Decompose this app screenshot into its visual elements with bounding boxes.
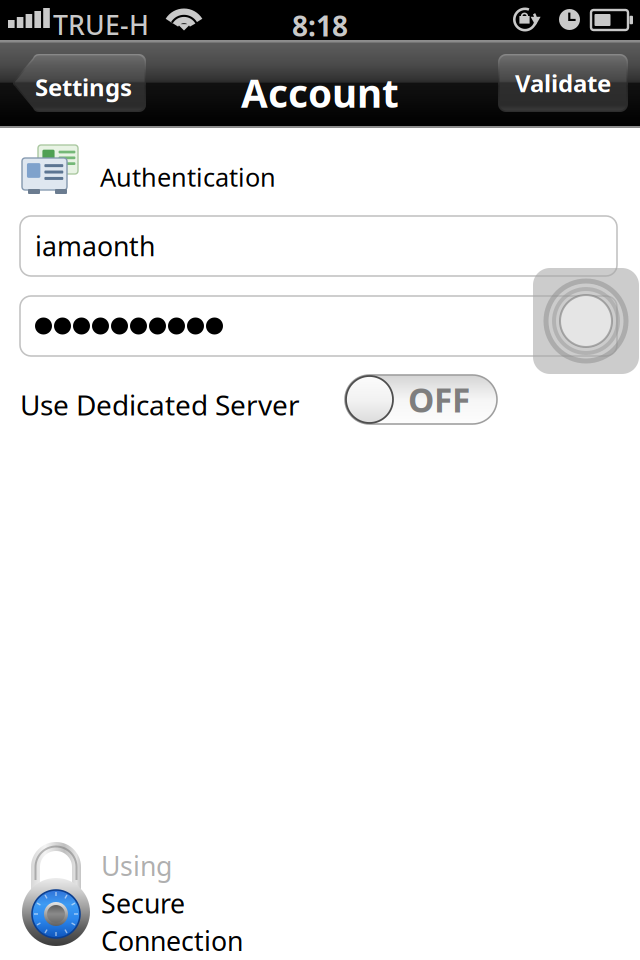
button[interactable]: Settings [10,54,146,112]
staticText: Secure [101,885,185,921]
staticText: TRUE-H [53,7,149,42]
button[interactable]: Validate [498,54,628,112]
staticText: iamaonth [35,228,155,264]
staticText: Use Dedicated Server [20,386,300,423]
staticText: Settings [35,71,132,103]
button[interactable]: OFF [345,375,497,424]
staticText: 8:18 [292,7,348,44]
staticText: Account [241,67,399,118]
staticText: Validate [515,67,611,99]
staticText: OFF [408,377,470,422]
staticText: Connection [101,923,243,958]
button[interactable]: AssistiveTouch [533,268,639,374]
staticText: Authentication [100,160,276,194]
staticText: Using [101,848,172,883]
